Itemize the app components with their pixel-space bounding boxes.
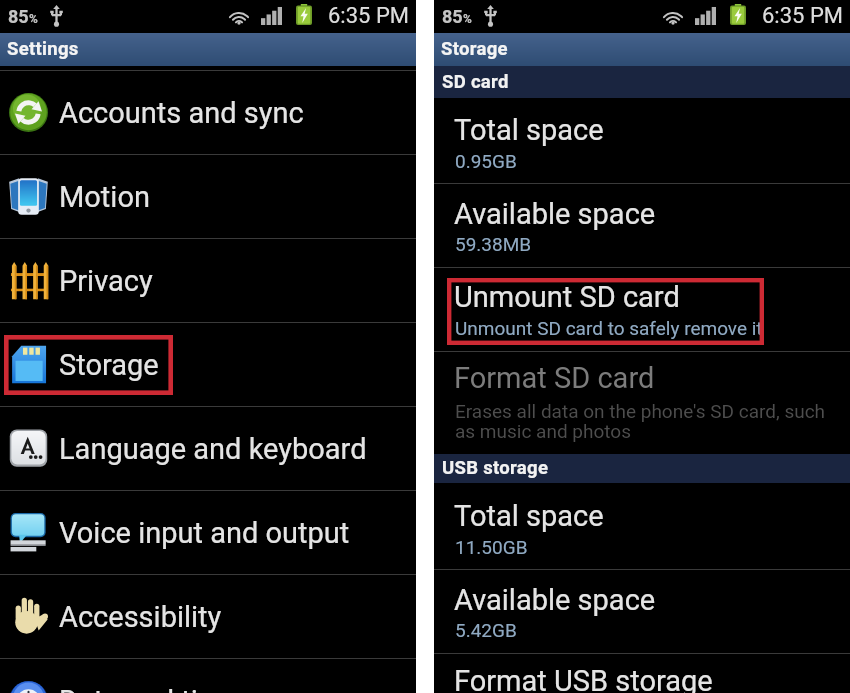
button[interactable]: Accounts and sync: [0, 71, 416, 154]
button[interactable]: Accessibility: [0, 575, 416, 658]
button[interactable]: Total space: [434, 483, 850, 569]
staticText: Accounts and sync: [59, 96, 304, 130]
staticText: %: [463, 12, 472, 26]
button[interactable]: Storage: [434, 33, 850, 66]
button[interactable]: Motion: [0, 155, 416, 238]
staticText: 59.38MB: [455, 233, 840, 255]
staticText: 85: [442, 6, 463, 27]
staticText: Language and keyboard: [59, 432, 367, 466]
staticText: Available space: [454, 583, 656, 617]
staticText: Date and time: [59, 684, 239, 693]
staticText: Unmount SD card to safely remove it: [455, 317, 840, 339]
staticText: 6:35 PM: [328, 3, 409, 29]
staticText: Motion: [59, 180, 150, 214]
staticText: Storage: [441, 38, 508, 60]
staticText: Format USB storage: [454, 664, 713, 693]
staticText: 0.95GB: [455, 150, 840, 172]
staticText: Settings: [7, 38, 79, 60]
staticText: Storage: [59, 348, 159, 382]
staticText: 5.42GB: [455, 619, 840, 641]
staticText: Total space: [454, 499, 604, 533]
button[interactable]: Language and keyboard: [0, 407, 416, 490]
staticText: 6:35 PM: [762, 3, 843, 29]
button[interactable]: Storage: [0, 323, 416, 406]
staticText: Erases all data on the phone's SD card, …: [455, 400, 840, 443]
button[interactable]: Settings: [0, 33, 416, 66]
button[interactable]: Available space: [434, 183, 850, 267]
button[interactable]: Format SD card: [434, 351, 850, 454]
staticText: 85: [8, 6, 29, 27]
button[interactable]: Format USB storage: [434, 653, 850, 693]
button[interactable]: Privacy: [0, 239, 416, 322]
button[interactable]: Total space: [434, 98, 850, 183]
staticText: %: [29, 12, 38, 26]
button[interactable]: Available space: [434, 569, 850, 653]
staticText: 11.50GB: [455, 536, 840, 558]
staticText: USB storage: [442, 457, 549, 479]
staticText: Format SD card: [454, 361, 655, 395]
staticText: SD card: [442, 71, 509, 93]
button[interactable]: Date and time: [0, 659, 416, 693]
staticText: Total space: [454, 113, 604, 147]
staticText: Accessibility: [59, 600, 222, 634]
staticText: Privacy: [59, 264, 153, 298]
staticText: Available space: [454, 197, 656, 231]
staticText: Voice input and output: [59, 516, 350, 550]
button[interactable]: Unmount SD card: [434, 267, 850, 351]
staticText: Unmount SD card: [454, 280, 680, 314]
button[interactable]: Voice input and output: [0, 491, 416, 574]
